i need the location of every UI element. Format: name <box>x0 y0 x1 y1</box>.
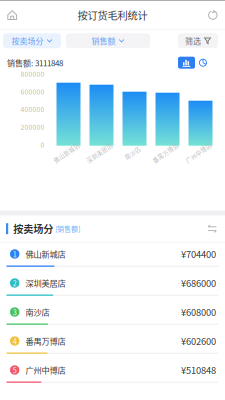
staticText: 销售额: 3111848 <box>7 57 63 68</box>
button[interactable]: 1 <box>0 242 225 271</box>
button[interactable]: 按卖场分 <box>3 33 61 48</box>
staticText: 3 <box>13 307 17 317</box>
staticText: 广州中博店 <box>183 149 213 157</box>
staticText: 番禺万博店 <box>25 335 65 347</box>
button[interactable]: 3 <box>0 300 225 329</box>
staticText: 南沙店 <box>25 306 49 318</box>
button[interactable]: 2 <box>0 271 225 300</box>
staticText: 深圳美居店 <box>25 277 65 289</box>
staticText: 1 <box>13 249 17 259</box>
staticText: 南沙店 <box>123 149 141 157</box>
staticText: 0 <box>40 140 44 149</box>
button[interactable]: 筛选 <box>178 33 218 48</box>
staticText: 800000 <box>20 69 44 79</box>
staticText: 销售额 <box>92 35 116 46</box>
staticText: 4 <box>13 336 17 346</box>
button[interactable]: Bar chart <box>178 57 195 69</box>
staticText: 按订货毛利统计 <box>77 8 147 22</box>
staticText: ¥608000 <box>181 305 216 319</box>
staticText: 200000 <box>20 122 44 132</box>
button[interactable]: 5 <box>0 358 225 387</box>
button[interactable]: 销售额 <box>66 33 150 48</box>
staticText: 佛山新城店 <box>25 248 65 260</box>
staticText: ¥686000 <box>181 276 216 290</box>
button[interactable]: 4 <box>0 329 225 358</box>
staticText: 深圳美居店 <box>84 149 114 157</box>
staticText: ¥602600 <box>181 334 216 348</box>
button[interactable]: Home <box>0 1 23 29</box>
staticText: 2 <box>13 278 17 288</box>
staticText: 广州中博店 <box>25 364 65 376</box>
staticText: ¥704400 <box>181 247 216 261</box>
staticText: 400000 <box>20 104 44 114</box>
staticText: 按卖场分 <box>12 35 44 46</box>
button[interactable]: Pie chart <box>195 57 211 69</box>
button[interactable]: Refresh <box>202 1 225 29</box>
staticText: 按卖场分 <box>13 221 53 236</box>
staticText: ¥510848 <box>181 363 216 377</box>
staticText: 佛山新城店 <box>51 149 81 157</box>
staticText: 筛选 <box>185 35 201 46</box>
staticText: 番禺万博店 <box>150 149 180 157</box>
staticText: [销售额] <box>55 224 80 234</box>
button[interactable]: Sort <box>207 224 217 233</box>
staticText: 5 <box>13 365 17 375</box>
staticText: 600000 <box>20 87 44 96</box>
